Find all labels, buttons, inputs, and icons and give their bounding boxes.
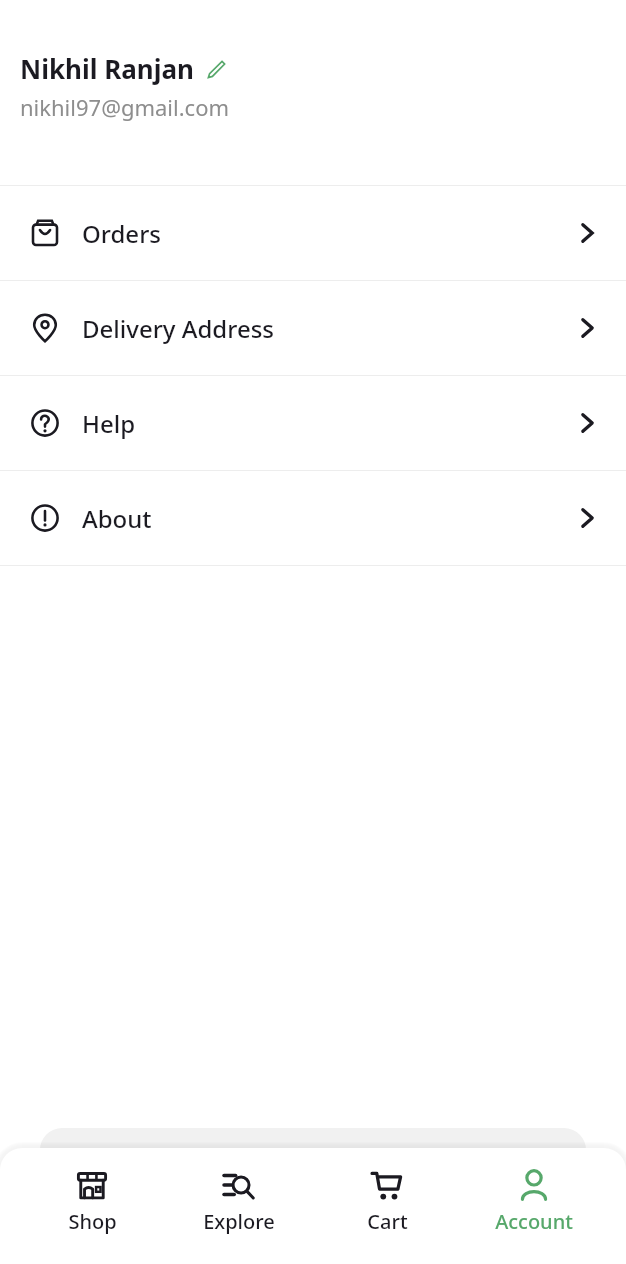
button[interactable]: Shop	[37, 1164, 147, 1239]
staticText: Account	[495, 1208, 573, 1235]
staticText: About	[82, 502, 152, 535]
staticText: Delivery Address	[82, 312, 275, 345]
staticText: Cart	[367, 1208, 408, 1235]
button[interactable]: Help	[0, 376, 626, 470]
button[interactable]: Cart	[332, 1164, 442, 1239]
button[interactable]: Edit profile	[202, 55, 230, 83]
button[interactable]: Delivery Address	[0, 281, 626, 375]
staticText: nikhil97@gmail.com	[20, 92, 230, 122]
staticText: Orders	[82, 217, 161, 250]
button[interactable]: Account	[479, 1164, 589, 1239]
staticText: Explore	[203, 1208, 275, 1235]
staticText: Shop	[68, 1208, 117, 1235]
button[interactable]: Explore	[184, 1164, 294, 1239]
button[interactable]: About	[0, 471, 626, 565]
staticText: Help	[82, 407, 136, 440]
button[interactable]: Log Out	[40, 1128, 586, 1228]
button[interactable]: Orders	[0, 186, 626, 280]
staticText: Nikhil Ranjan	[20, 51, 194, 86]
